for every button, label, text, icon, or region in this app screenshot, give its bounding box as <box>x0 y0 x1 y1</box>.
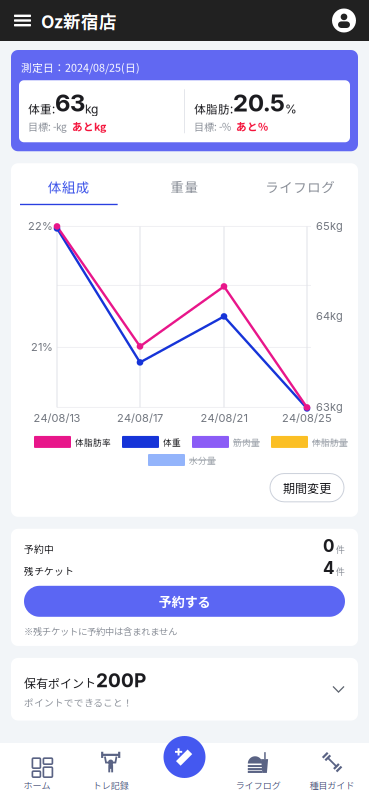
button[interactable] <box>148 743 221 800</box>
staticText: 目標: -% <box>194 119 231 134</box>
button[interactable]: ライフログ <box>221 743 295 800</box>
staticText: 63 <box>55 88 85 117</box>
staticText: 件 <box>334 542 345 556</box>
button[interactable]: 体組成 <box>11 176 127 205</box>
staticText: 24/08/17 <box>117 411 163 425</box>
button[interactable]: 重量 <box>127 176 242 205</box>
staticText: 件 <box>334 564 345 578</box>
staticText: 体脂肪量 <box>312 435 348 448</box>
button[interactable]: 期間変更 <box>270 474 344 502</box>
button[interactable]: 種目ガイド <box>295 743 369 800</box>
staticText: % <box>285 102 297 116</box>
staticText: 重量 <box>170 176 198 197</box>
staticText: 20.5 <box>233 88 285 117</box>
staticText: ライフログ <box>236 778 281 792</box>
button[interactable]: 記録を追加 <box>159 732 209 782</box>
staticText: ※残チケットに予約中は含まれません <box>24 624 177 638</box>
staticText: 21% <box>31 340 53 354</box>
button[interactable]: トレ記録 <box>74 743 148 800</box>
staticText: あとkg <box>72 118 106 134</box>
staticText: 種目ガイド <box>310 778 355 792</box>
staticText: 64kg <box>316 309 343 323</box>
staticText: 予約中 <box>24 541 54 556</box>
staticText: ホーム <box>23 778 50 792</box>
staticText: ポイントでできること！ <box>24 695 133 709</box>
staticText: ライフログ <box>265 176 335 197</box>
button[interactable]: ホーム <box>0 743 74 800</box>
staticText: Oz新宿店 <box>41 7 117 34</box>
staticText: 0 <box>323 535 334 556</box>
staticText: kg <box>85 102 98 116</box>
staticText: 200P <box>96 669 146 692</box>
staticText: 予約する <box>158 591 210 611</box>
staticText: 体重 <box>163 435 181 448</box>
staticText: 測定日：2024/08/25(日) <box>21 59 140 75</box>
staticText: 水分量 <box>189 453 216 467</box>
staticText: 24/08/13 <box>33 411 80 425</box>
staticText: 4 <box>323 557 334 578</box>
staticText: 24/08/21 <box>200 411 247 425</box>
staticText: 22% <box>28 219 53 233</box>
button[interactable]: 保有ポイント <box>11 658 358 721</box>
button[interactable]: Account <box>323 0 365 41</box>
staticText: 体重: <box>28 100 55 117</box>
button[interactable]: 予約する <box>24 586 345 617</box>
staticText: 体脂肪率 <box>75 435 111 448</box>
staticText: 残チケット <box>24 563 74 578</box>
staticText: 体組成 <box>48 176 90 197</box>
staticText: 目標: -kg <box>28 119 67 134</box>
staticText: 63kg <box>316 400 343 414</box>
button[interactable]: Menu <box>4 0 41 41</box>
staticText: 24/08/25 <box>282 411 332 425</box>
staticText: 筋肉量 <box>233 435 260 448</box>
staticText: 保有ポイント <box>24 674 96 692</box>
staticText: トレ記録 <box>93 778 129 792</box>
staticText: 期間変更 <box>283 479 331 497</box>
staticText: あと% <box>236 118 268 134</box>
staticText: 体脂肪: <box>194 100 233 117</box>
button[interactable]: ライフログ <box>242 176 358 205</box>
staticText: 65kg <box>316 219 343 233</box>
